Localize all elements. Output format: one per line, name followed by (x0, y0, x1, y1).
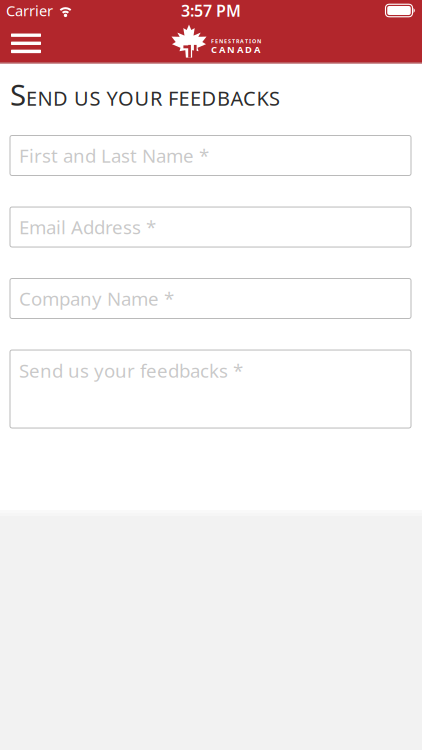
staticText: END US YOUR FEEDBACKS (26, 85, 280, 111)
staticText: 3:57 PM (181, 0, 241, 21)
staticText: F E N E S T R A T I O N (211, 38, 261, 45)
button[interactable]: Email Address * (10, 207, 411, 247)
button[interactable]: Send us your feedbacks * (10, 350, 411, 428)
button[interactable]: First and Last Name * (10, 135, 411, 175)
staticText: Carrier (6, 1, 53, 20)
button[interactable]: Fenestration Canada (170, 25, 271, 58)
staticText: Company Name * (19, 286, 174, 311)
staticText: Email Address * (19, 215, 156, 239)
staticText: Send us your feedbacks * (19, 358, 243, 383)
staticText: S (10, 75, 26, 114)
staticText: C A N A D A (211, 43, 260, 55)
button[interactable]: Company Name * (10, 278, 411, 318)
button[interactable]: Menu (6, 28, 46, 58)
staticText: First and Last Name * (19, 143, 209, 168)
